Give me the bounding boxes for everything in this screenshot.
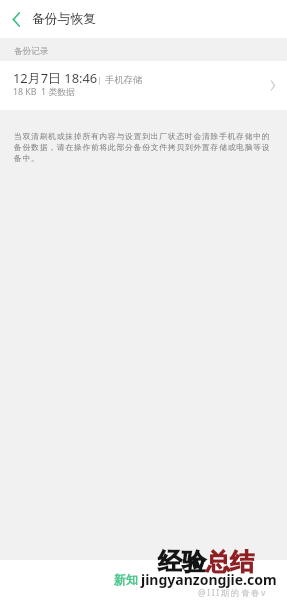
button[interactable]: 12月7日 18:46 (0, 61, 287, 110)
staticText: 手机存储 (105, 74, 143, 86)
button[interactable]: Back (0, 3, 32, 35)
staticText: 12月7日 18:46 (13, 69, 98, 87)
staticText: 经验总结 (158, 547, 254, 577)
staticText: 18 KB 1 类数据 (13, 86, 75, 98)
staticText: 备份与恢复 (32, 11, 96, 27)
staticText: 新知 (114, 572, 138, 587)
staticText: 备份记录 (14, 46, 49, 57)
staticText: jingyanzongjie.com (141, 570, 277, 589)
staticText: 当双清刷机或抹掉所有内容与设置到出厂状态时会清除手机存储中的备份数据，请在操作前… (14, 131, 275, 163)
staticText: @III期的青春v (198, 587, 268, 599)
